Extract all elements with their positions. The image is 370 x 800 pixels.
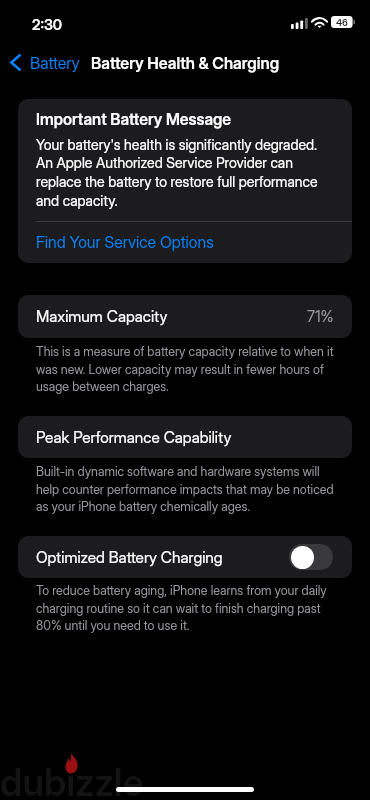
button[interactable]: Battery [4, 49, 86, 76]
button[interactable]: Peak Performance Capability [18, 416, 352, 458]
staticText: 46 [336, 17, 348, 28]
button[interactable]: Maximum Capacity [18, 295, 352, 338]
staticText: Optimized Battery Charging [36, 548, 223, 567]
button[interactable]: Optimized Battery Charging toggle [289, 544, 333, 570]
staticText: Peak Performance Capability [36, 428, 232, 447]
staticText: Find Your Service Options [36, 233, 214, 252]
staticText: 2:30 [32, 16, 63, 34]
staticText: Your battery's health is significantly d… [36, 136, 326, 209]
staticText: Important Battery Message [36, 110, 232, 129]
staticText: Battery [30, 53, 80, 72]
staticText: Battery Health & Charging [91, 53, 280, 72]
staticText: To reduce battery aging, iPhone learns f… [36, 583, 339, 633]
staticText: This is a measure of battery capacity re… [36, 344, 339, 394]
staticText: Built-in dynamic software and hardware s… [36, 464, 339, 514]
staticText: dubizzle [0, 759, 144, 800]
staticText: 71% [307, 307, 334, 326]
button[interactable]: Find Your Service Options [18, 222, 352, 263]
staticText: Maximum Capacity [36, 307, 168, 326]
button[interactable]: Optimized Battery Charging [18, 536, 352, 578]
